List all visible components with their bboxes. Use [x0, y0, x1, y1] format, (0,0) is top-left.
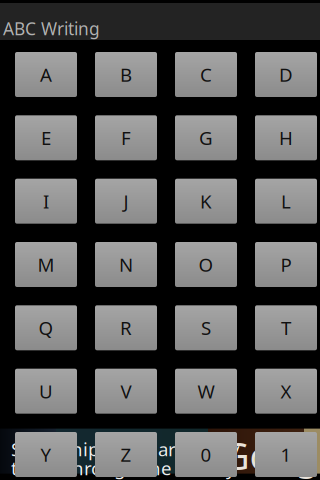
staticText: Q — [38, 315, 53, 340]
button[interactable]: P — [255, 242, 317, 287]
staticText: U — [39, 379, 53, 404]
button[interactable]: C — [175, 52, 237, 97]
staticText: H — [279, 125, 293, 150]
button[interactable]: Advertisement — [0, 432, 320, 477]
staticText: Z — [120, 442, 131, 467]
staticText: J — [123, 189, 128, 214]
staticText: E — [41, 125, 51, 150]
button[interactable]: F — [95, 115, 157, 160]
staticText: S — [201, 315, 211, 340]
button[interactable]: B — [95, 52, 157, 97]
button[interactable]: D — [255, 52, 317, 97]
staticText: T — [281, 315, 291, 340]
staticText: P — [280, 252, 291, 277]
button[interactable]: V — [95, 369, 157, 414]
staticText: W — [197, 379, 214, 404]
staticText: Google — [222, 431, 320, 480]
button[interactable]: K — [175, 179, 237, 224]
button[interactable]: Z — [95, 432, 157, 477]
staticText: A — [40, 62, 52, 87]
staticText: Spaceships Now are ready — [11, 437, 240, 461]
button[interactable]: A — [15, 52, 77, 97]
staticText: 1 — [280, 442, 291, 467]
button[interactable]: O — [175, 242, 237, 287]
button[interactable]: 1 — [255, 432, 317, 477]
button[interactable]: M — [15, 242, 77, 287]
button[interactable]: E — [15, 115, 77, 160]
button[interactable]: 0 — [175, 432, 237, 477]
staticText: L — [281, 189, 291, 214]
staticText: D — [279, 62, 293, 87]
staticText: X — [280, 379, 291, 404]
staticText: ABC Writing — [3, 17, 100, 40]
staticText: Y — [40, 442, 51, 467]
button[interactable]: N — [95, 242, 157, 287]
button[interactable]: R — [95, 305, 157, 350]
button[interactable]: H — [255, 115, 317, 160]
button[interactable]: W — [175, 369, 237, 414]
button[interactable]: U — [15, 369, 77, 414]
staticText: C — [200, 62, 212, 87]
button[interactable]: Q — [15, 305, 77, 350]
button[interactable]: I — [15, 179, 77, 224]
staticText: 0 — [200, 442, 211, 467]
button[interactable]: X — [255, 369, 317, 414]
staticText: M — [37, 252, 54, 277]
button[interactable]: L — [255, 179, 317, 224]
button[interactable]: G — [175, 115, 237, 160]
staticText: G — [199, 125, 213, 150]
staticText: R — [120, 315, 132, 340]
button[interactable]: Y — [15, 432, 77, 477]
staticText: K — [200, 189, 212, 214]
staticText: V — [120, 379, 131, 404]
staticText: B — [120, 62, 132, 87]
button[interactable]: S — [175, 305, 237, 350]
button[interactable]: J — [95, 179, 157, 224]
staticText: I — [43, 189, 49, 214]
staticText: O — [198, 252, 213, 277]
staticText: F — [121, 125, 131, 150]
staticText: travel through the Galaxy — [11, 456, 236, 480]
staticText: N — [119, 252, 133, 277]
button[interactable]: T — [255, 305, 317, 350]
